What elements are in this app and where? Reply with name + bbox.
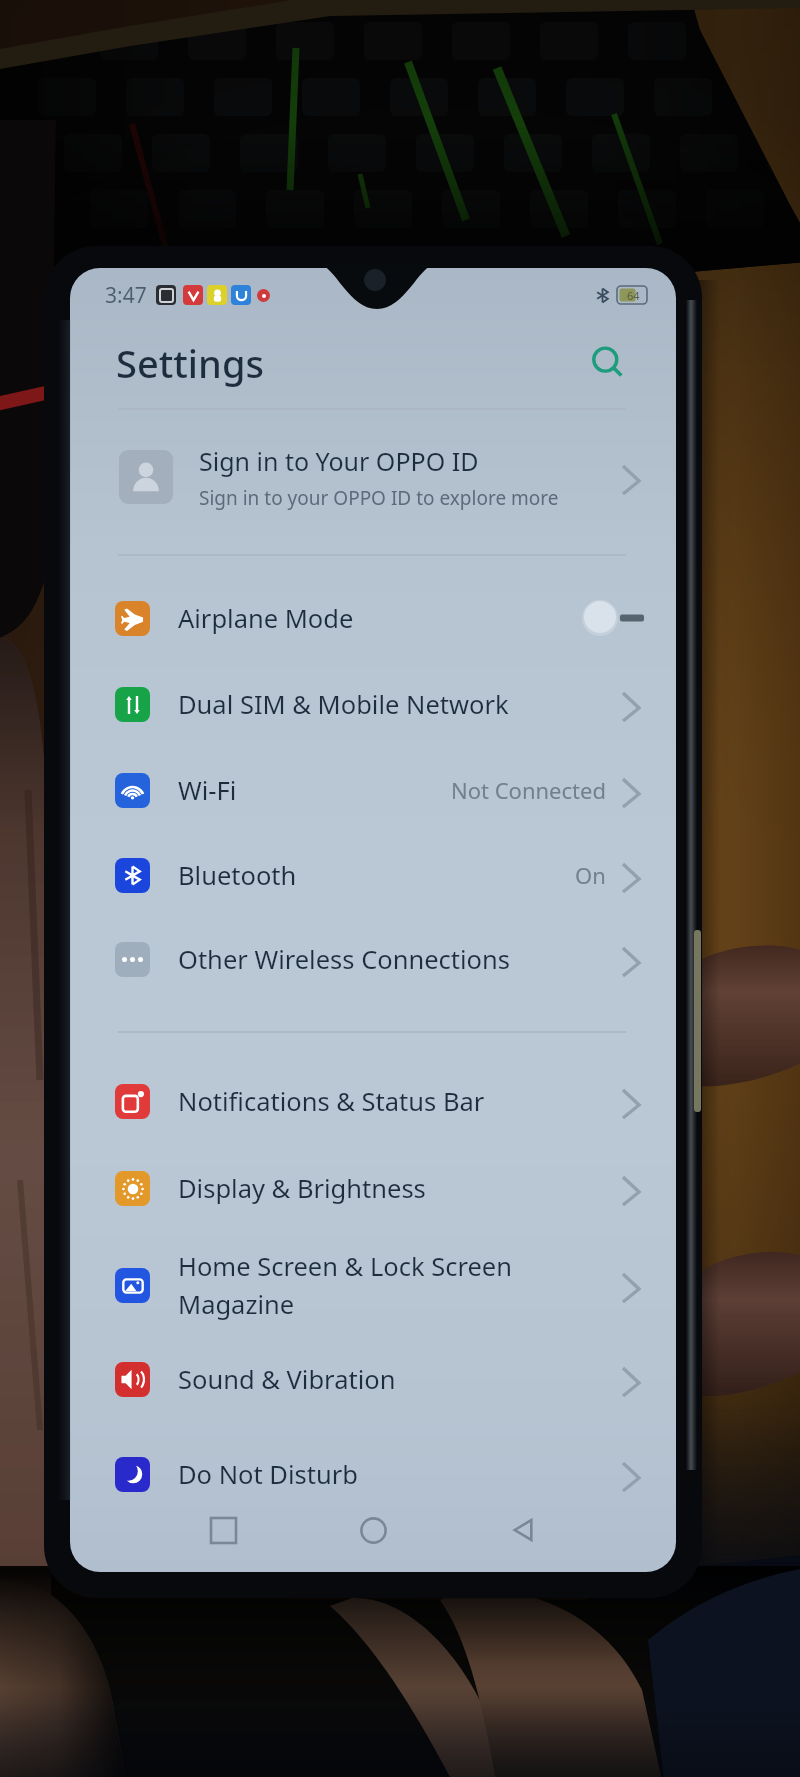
- staticText: Home Screen & Lock Screen Magazine: [178, 1249, 512, 1321]
- button[interactable]: Airplane Mode: [70, 575, 676, 661]
- button[interactable]: Search: [586, 341, 630, 385]
- staticText: Other Wireless Connections: [178, 942, 511, 977]
- button[interactable]: Do Not Disturb: [70, 1420, 676, 1528]
- staticText: Settings: [116, 337, 264, 389]
- staticText: Not Connected: [451, 775, 606, 805]
- button[interactable]: Sound & Vibration: [70, 1338, 676, 1420]
- staticText: Dual SIM & Mobile Network: [178, 687, 509, 722]
- staticText: Wi-Fi: [178, 773, 237, 808]
- staticText: Sign in to Your OPPO ID: [199, 444, 479, 478]
- staticText: Bluetooth: [178, 858, 297, 893]
- button[interactable]: Wi-Fi: [70, 747, 676, 833]
- button[interactable]: Recents: [201, 1508, 245, 1552]
- button[interactable]: Bluetooth: [70, 833, 676, 917]
- button[interactable]: Dual SIM & Mobile Network: [70, 661, 676, 747]
- button[interactable]: Other Wireless Connections: [70, 917, 676, 1001]
- staticText: Notifications & Status Bar: [178, 1084, 485, 1119]
- staticText: Display & Brightness: [178, 1171, 426, 1206]
- button[interactable]: Home: [351, 1508, 395, 1552]
- staticText: 64: [627, 288, 640, 303]
- button[interactable]: Sign in to Your OPPO ID: [70, 425, 676, 529]
- staticText: On: [575, 860, 606, 890]
- staticText: Sound & Vibration: [178, 1362, 396, 1397]
- button[interactable]: Display & Brightness: [70, 1144, 676, 1232]
- button[interactable]: Notifications & Status Bar: [70, 1058, 676, 1144]
- staticText: 3:47: [105, 281, 147, 309]
- button[interactable]: Back: [501, 1508, 545, 1552]
- staticText: Sign in to your OPPO ID to explore more: [199, 485, 559, 511]
- staticText: Do Not Disturb: [178, 1457, 358, 1492]
- staticText: Airplane Mode: [178, 601, 354, 636]
- button[interactable]: Home Screen & Lock Screen Magazine: [70, 1232, 676, 1338]
